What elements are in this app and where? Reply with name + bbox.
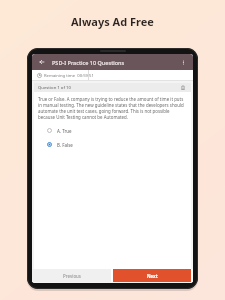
staticText: PSD-I Practice 10 Questions bbox=[52, 59, 125, 66]
button[interactable]: A. True bbox=[34, 126, 191, 135]
button[interactable]: Bookmark question bbox=[179, 84, 187, 92]
staticText: Next bbox=[147, 273, 158, 279]
staticText: Remaining time 00:59:51 bbox=[44, 73, 94, 79]
button[interactable]: Next bbox=[113, 269, 191, 282]
staticText: True or False. A company is trying to re… bbox=[38, 96, 187, 120]
button[interactable]: Previous bbox=[32, 269, 111, 282]
button[interactable]: Back bbox=[37, 57, 47, 67]
staticText: B. False bbox=[57, 142, 73, 148]
button[interactable]: More options bbox=[178, 57, 188, 67]
staticText: A. True bbox=[57, 128, 72, 134]
button[interactable]: B. False bbox=[34, 140, 191, 149]
staticText: Question 1 of 10 bbox=[38, 85, 71, 91]
staticText: Previous bbox=[63, 273, 81, 279]
staticText: Always Ad Free bbox=[71, 14, 154, 29]
